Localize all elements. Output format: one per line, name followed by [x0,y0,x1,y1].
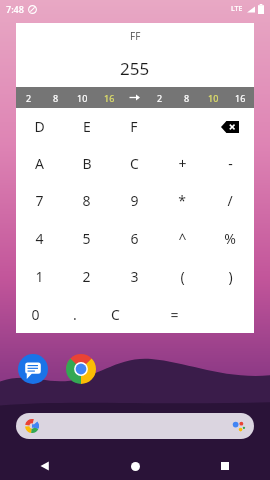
staticText: 16 [104,92,115,104]
button[interactable]: Convert [123,87,146,108]
staticText: 10 [208,92,219,104]
button[interactable]: 1 [16,257,63,295]
staticText: FF [130,29,141,43]
button[interactable]: B [63,145,110,182]
button[interactable]: % [206,219,254,257]
staticText: D [34,117,45,136]
button[interactable]: 2 [16,87,42,108]
staticText: 10 [77,92,88,104]
button[interactable]: 16 [96,87,123,108]
button[interactable]: Messages [16,352,50,386]
button[interactable]: 8 [42,87,69,108]
staticText: LTE [231,4,243,14]
button[interactable]: 0 [16,295,55,333]
button[interactable]: 3 [110,257,158,295]
button[interactable]: E [63,108,110,145]
staticText: C [130,154,139,173]
button[interactable]: 10 [69,87,96,108]
button[interactable]: Recents [180,452,270,480]
staticText: ) [228,267,233,286]
staticText: 7:48 [6,3,24,15]
button[interactable]: . [55,295,95,333]
staticText: 8 [53,92,59,104]
button[interactable]: 4 [16,219,63,257]
button[interactable]: 7 [16,182,63,219]
button[interactable]: 2 [146,87,173,108]
staticText: - [228,154,233,173]
staticText: 8 [82,191,91,210]
staticText: = [170,305,179,324]
staticText: A [35,154,44,173]
staticText: B [82,154,92,173]
button[interactable]: ) [206,257,254,295]
staticText: 2 [157,92,163,104]
button[interactable]: * [158,182,206,219]
button[interactable]: A [16,145,63,182]
staticText: ( [180,267,185,286]
staticText: ^ [178,229,187,248]
button[interactable]: ^ [158,219,206,257]
button[interactable]: Home [90,452,180,480]
button[interactable]: 5 [63,219,110,257]
staticText: . [73,305,77,324]
button[interactable]: 16 [227,87,254,108]
staticText: 3 [130,267,139,286]
staticText: 5 [82,229,91,248]
button[interactable]: + [158,145,206,182]
button[interactable]: ( [158,257,206,295]
button[interactable]: = [135,295,214,333]
button[interactable]: Back [0,452,90,480]
button[interactable]: Delete [206,108,254,145]
button[interactable] [16,413,254,439]
button[interactable]: 8 [63,182,110,219]
staticText: 8 [184,92,190,104]
button[interactable]: 2 [63,257,110,295]
staticText: + [178,154,187,173]
staticText: C [111,305,120,324]
staticText: 255 [120,57,150,80]
staticText: F [130,117,138,136]
staticText: 2 [26,92,32,104]
staticText: 1 [35,267,44,286]
button[interactable]: C [95,295,135,333]
staticText: / [227,191,233,210]
staticText: 4 [35,229,44,248]
staticText: % [224,229,236,248]
button[interactable]: D [16,108,63,145]
button[interactable]: / [206,182,254,219]
staticText: 6 [130,229,139,248]
button[interactable]: C [110,145,158,182]
button[interactable]: - [206,145,254,182]
button[interactable]: F [110,108,158,145]
staticText: E [83,117,91,136]
button[interactable]: 6 [110,219,158,257]
staticText: * [178,191,186,210]
staticText: 16 [235,92,246,104]
button[interactable]: 10 [200,87,227,108]
staticText: 7 [35,191,44,210]
button[interactable]: 9 [110,182,158,219]
staticText: 2 [82,267,91,286]
staticText: 9 [130,191,139,210]
button[interactable]: Chrome [64,352,98,386]
staticText: 0 [31,305,40,324]
button[interactable]: 8 [173,87,200,108]
